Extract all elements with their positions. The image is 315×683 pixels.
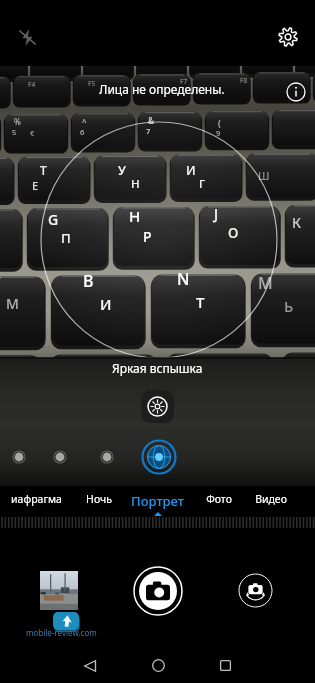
button[interactable]: Shutter: [133, 566, 183, 616]
button[interactable]: Home: [138, 648, 178, 683]
button[interactable]: Gallery: [39, 570, 81, 629]
staticText: mobile-review.com: [26, 627, 97, 638]
staticText: ^: [82, 116, 87, 127]
staticText: N: [177, 268, 190, 290]
staticText: Н: [129, 206, 141, 226]
staticText: У: [118, 162, 126, 179]
button[interactable]: Back: [70, 648, 110, 683]
staticText: У: [0, 272, 1, 291]
staticText: Портрет: [131, 492, 184, 510]
button[interactable]: Info: [281, 77, 311, 107]
staticText: О: [228, 224, 239, 242]
staticText: Г: [199, 176, 206, 192]
staticText: Р: [143, 227, 152, 246]
staticText: Ночь: [86, 492, 112, 506]
staticText: J: [214, 204, 219, 223]
staticText: Н: [131, 176, 140, 192]
button[interactable]: Фото: [189, 486, 249, 516]
staticText: Т: [196, 292, 205, 312]
staticText: Видео: [255, 492, 287, 506]
button[interactable]: Recents: [205, 648, 245, 683]
staticText: €: [30, 128, 35, 138]
staticText: &: [148, 115, 154, 126]
button[interactable]: Портрет: [127, 486, 187, 516]
staticText: Е: [32, 178, 39, 193]
staticText: F5: [88, 79, 96, 88]
staticText: И: [100, 294, 112, 314]
staticText: 7: [146, 126, 151, 136]
button[interactable]: Flash off: [10, 20, 44, 54]
staticText: (: [218, 117, 221, 129]
staticText: Яркая вспышка: [112, 360, 203, 376]
staticText: F8: [240, 76, 248, 85]
staticText: иафрагма: [11, 492, 62, 506]
staticText: М: [258, 272, 273, 294]
staticText: К: [292, 213, 302, 232]
staticText: М: [6, 294, 19, 313]
staticText: Ш: [258, 168, 270, 183]
staticText: П: [61, 229, 71, 247]
staticText: %: [14, 116, 21, 127]
staticText: T: [40, 162, 47, 178]
button[interactable]: Switch camera: [238, 573, 273, 608]
button[interactable]: Flash intensity: [141, 390, 174, 423]
staticText: G: [48, 210, 59, 229]
staticText: 6: [80, 127, 85, 137]
staticText: F4: [28, 80, 36, 89]
staticText: Ь: [284, 296, 294, 316]
button[interactable]: Settings: [271, 20, 305, 54]
staticText: Лица не определены.: [99, 81, 225, 97]
staticText: 9: [216, 128, 221, 138]
staticText: 5: [12, 127, 17, 137]
button[interactable]: иафрагма: [6, 486, 66, 516]
staticText: В: [83, 270, 94, 292]
button[interactable]: Видео: [241, 486, 301, 516]
staticText: И: [186, 162, 196, 179]
staticText: F7: [180, 77, 188, 86]
staticText: Фото: [206, 492, 232, 506]
button[interactable]: Ночь: [69, 486, 129, 516]
